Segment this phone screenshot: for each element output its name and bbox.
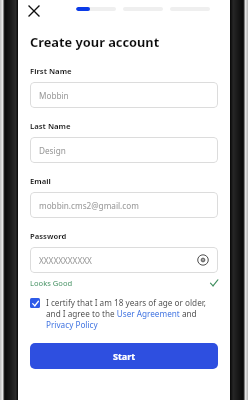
button[interactable]: Mobbin <box>30 82 218 108</box>
staticText: Create your account <box>30 33 160 50</box>
button[interactable]: mobbin.cms2@gmail.com <box>30 192 218 218</box>
button[interactable]: I certify that I am 18 years of age or o… <box>30 297 218 330</box>
button[interactable]: XXXXXXXXXXX <box>30 247 218 273</box>
button[interactable]: Start <box>30 343 218 369</box>
staticText: I certify that I am 18 years of age or o… <box>46 297 218 330</box>
staticText: mobbin.cms2@gmail.com <box>39 200 209 211</box>
staticText: First Name <box>30 66 72 76</box>
staticText: Email <box>30 176 51 186</box>
staticText: Last Name <box>30 121 71 131</box>
staticText: XXXXXXXXXXX <box>39 255 197 266</box>
staticText: Password <box>30 231 67 241</box>
other: Show password <box>197 254 209 266</box>
staticText: Looks Good <box>30 278 210 288</box>
staticText: Mobbin <box>39 90 209 101</box>
staticText: Start <box>113 350 136 362</box>
staticText: Design <box>39 145 209 156</box>
button[interactable]: Design <box>30 137 218 163</box>
button[interactable]: Close <box>23 0 45 22</box>
